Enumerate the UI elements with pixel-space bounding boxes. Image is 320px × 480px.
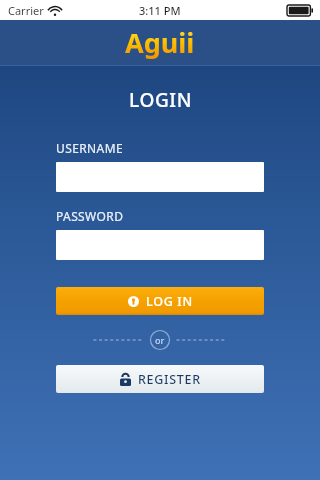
- other: Log in: [128, 296, 139, 307]
- button[interactable]: Log in: [56, 287, 264, 315]
- button[interactable]: Register: [56, 365, 264, 393]
- staticText: LOG IN: [146, 293, 193, 310]
- staticText: REGISTER: [138, 371, 201, 388]
- staticText: LOGIN: [129, 87, 192, 113]
- staticText: 3:11 PM: [139, 3, 181, 18]
- other: Register: [120, 373, 131, 386]
- staticText: or: [155, 334, 165, 346]
- staticText: USERNAME: [56, 140, 124, 156]
- staticText: Aguii: [125, 24, 195, 61]
- staticText: Carrier: [8, 3, 44, 18]
- staticText: PASSWORD: [56, 208, 124, 224]
